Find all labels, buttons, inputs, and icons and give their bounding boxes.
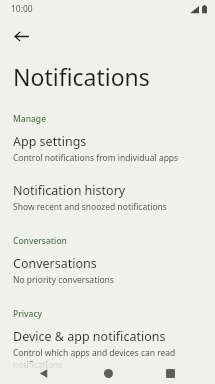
staticText: Manage: [13, 113, 47, 125]
button[interactable]: Recent apps: [157, 362, 183, 384]
button[interactable]: Device & app notifications: [0, 323, 215, 374]
button[interactable]: Back: [30, 362, 56, 384]
staticText: Show recent and snoozed notifications: [13, 201, 167, 213]
button[interactable]: Notification history: [0, 177, 215, 216]
staticText: App settings: [13, 133, 87, 150]
button[interactable]: Back: [5, 20, 37, 52]
staticText: Device & app notifications: [13, 328, 166, 345]
staticText: Notification history: [13, 182, 126, 199]
staticText: Control which apps and devices can read …: [13, 347, 205, 371]
staticText: Conversations: [13, 255, 97, 272]
staticText: No priority conversations: [13, 274, 114, 286]
staticText: 10:00: [11, 3, 33, 15]
button[interactable]: Conversations: [0, 250, 215, 289]
button[interactable]: App settings: [0, 128, 215, 167]
staticText: Notifications: [13, 61, 150, 92]
button[interactable]: Home: [95, 362, 121, 384]
staticText: Conversation: [13, 235, 67, 247]
staticText: Control notifications from individual ap…: [13, 152, 179, 164]
staticText: Privacy: [13, 308, 43, 320]
